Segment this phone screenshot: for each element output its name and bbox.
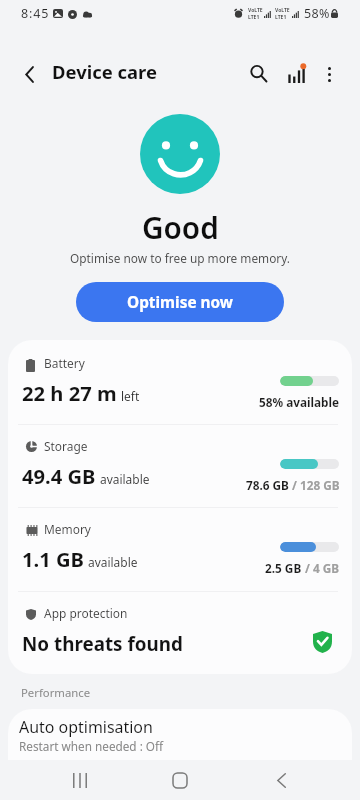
- staticText: Good: [142, 207, 219, 247]
- staticText: Performance: [21, 685, 91, 700]
- staticText: LTE1: [248, 14, 260, 21]
- staticText: LTE1: [275, 14, 287, 21]
- staticText: 58% available: [259, 394, 340, 410]
- staticText: 78.6 GB: [246, 477, 289, 493]
- staticText: available: [100, 471, 150, 487]
- staticText: Device care: [52, 59, 157, 84]
- staticText: 2.5 GB: [265, 560, 302, 576]
- button[interactable]: App protection: [8, 590, 352, 674]
- staticText: / 4 GB: [302, 560, 340, 576]
- button[interactable]: Memory: [8, 506, 352, 589]
- staticText: Auto optimisation: [19, 716, 153, 738]
- staticText: Battery: [44, 355, 85, 371]
- button[interactable]: Battery: [8, 340, 352, 423]
- staticText: Optimise now: [127, 292, 233, 313]
- button[interactable]: Back: [251, 760, 311, 800]
- staticText: / 128 GB: [289, 477, 340, 493]
- staticText: App protection: [44, 605, 128, 621]
- button[interactable]: Home: [150, 760, 210, 800]
- staticText: Memory: [44, 521, 91, 537]
- staticText: VoLTE: [275, 7, 290, 14]
- button[interactable]: Navigate up: [7, 52, 51, 96]
- button[interactable]: Storage: [8, 423, 352, 506]
- staticText: left: [121, 388, 140, 404]
- button[interactable]: Search: [236, 51, 280, 95]
- staticText: Optimise now to free up more memory.: [70, 250, 291, 266]
- staticText: No threats found: [22, 631, 183, 657]
- button[interactable]: Usage statistics: [274, 52, 318, 96]
- staticText: 1.1 GB: [22, 545, 84, 572]
- staticText: Storage: [44, 438, 88, 454]
- staticText: 8:45: [21, 5, 50, 22]
- staticText: VoLTE: [248, 7, 263, 14]
- staticText: 49.4 GB: [22, 462, 96, 489]
- staticText: available: [88, 554, 138, 570]
- button[interactable]: Auto optimisation: [8, 709, 352, 760]
- staticText: Restart when needed : Off: [19, 738, 164, 754]
- staticText: 58%: [304, 5, 330, 22]
- staticText: 22 h 27 m: [22, 379, 117, 406]
- button[interactable]: Optimise now: [76, 282, 284, 322]
- button[interactable]: Recent apps: [50, 760, 110, 800]
- button[interactable]: More options: [307, 52, 351, 96]
